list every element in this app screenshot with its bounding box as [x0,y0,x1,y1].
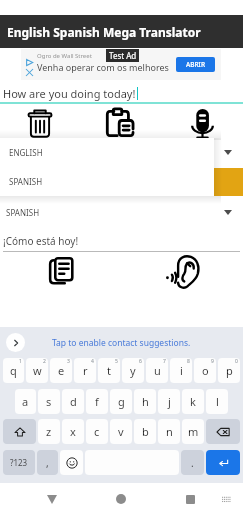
button[interactable]: x [62,419,84,444]
button[interactable]: ?123 [3,450,35,475]
button[interactable]: n [158,419,180,444]
button[interactable]: Voice input [191,108,214,139]
staticText: . [191,456,194,470]
staticText: i [180,363,183,378]
staticText: Venha operar com os melhores [37,61,169,73]
button[interactable]: i [170,358,192,383]
staticText: 7 [163,358,166,365]
button[interactable]: Tap to enable contact suggestions. [0,333,243,352]
button[interactable]: y [122,358,144,383]
button[interactable]: q [3,358,24,383]
button[interactable]: SPANISH [0,197,243,227]
button[interactable]: f [86,389,108,414]
button[interactable]: ABRIR [176,57,215,72]
button[interactable]: k [182,389,204,414]
button[interactable]: a [15,389,36,414]
button[interactable]: SPANISH [0,167,214,196]
staticText: SPANISH [6,207,40,218]
button[interactable]: enter [206,450,240,475]
button[interactable]: Home [109,487,133,511]
staticText: l [216,394,219,409]
staticText: a [22,394,29,409]
button[interactable]: ENGLISH [0,137,243,167]
button[interactable]: r [74,358,96,383]
button[interactable]: z [38,419,60,444]
button[interactable]: v [110,419,132,444]
staticText: p [226,363,233,378]
button[interactable]: Listen [165,255,200,288]
button[interactable]: . [181,450,204,475]
staticText: , [46,456,49,470]
button[interactable]: Expand suggestions [6,333,25,352]
button[interactable]: Paste [104,106,137,139]
staticText: o [202,363,209,378]
staticText: u [154,363,161,378]
button[interactable]: m [182,419,204,444]
staticText: SPANISH [9,176,43,187]
staticText: 6 [139,358,142,365]
button[interactable]: t [98,358,120,383]
staticText: ?123 [10,457,28,468]
button[interactable]: c [86,419,108,444]
staticText: n [166,424,173,439]
button[interactable]: Recent apps [178,487,202,511]
staticText: e [58,363,65,378]
staticText: 0 [235,358,238,365]
staticText: ENGLISH [6,147,40,158]
button[interactable]: p [218,358,240,383]
staticText: 2 [43,358,46,365]
staticText: f [95,394,99,409]
staticText: k [190,394,196,409]
staticText: b [142,424,149,439]
button[interactable]: h [134,389,156,414]
staticText: ABRIR [186,60,206,69]
staticText: t [107,363,111,378]
staticText: v [118,424,124,439]
staticText: s [46,394,52,409]
button[interactable]: j [158,389,180,414]
button[interactable]: d [62,389,84,414]
staticText: How are you doing today! [3,86,136,101]
button[interactable]: e [50,358,72,383]
button[interactable]: Clear text [27,107,53,138]
staticText: ENGLISH [9,147,43,158]
button[interactable]: b [134,419,156,444]
button[interactable]: s [38,389,60,414]
button[interactable]: English Spanish Mega Translator [0,15,243,48]
staticText: w [33,363,42,378]
button[interactable]: shift [3,419,36,444]
button[interactable]: g [110,389,132,414]
staticText: 4 [91,358,94,365]
staticText: x [70,424,76,439]
staticText: h [142,394,149,409]
staticText: r [83,363,88,378]
staticText: 8 [187,358,190,365]
staticText: g [118,394,125,409]
staticText: y [130,363,136,378]
button[interactable]: backspace [206,419,240,444]
staticText: q [10,363,17,378]
button[interactable]: Switch keyboard [214,487,238,511]
button[interactable]: l [206,389,228,414]
staticText: c [94,424,100,439]
staticText: 9 [211,358,214,365]
staticText: Test Ad [109,50,137,61]
button[interactable]: u [146,358,168,383]
staticText: English Spanish Mega Translator [7,24,201,40]
button[interactable]: emoji [60,450,83,475]
staticText: ¡Cómo está hoy! [3,234,79,248]
button[interactable]: Ogro de Wall Street [21,49,221,80]
button[interactable]: ENGLISH [0,138,214,167]
staticText: 1 [19,358,22,365]
staticText: m [188,424,199,439]
button[interactable]: w [26,358,48,383]
button[interactable]: Copy translation [48,256,75,287]
staticText: 3 [67,358,70,365]
staticText: Ogro de Wall Street [37,52,92,60]
staticText: Tap to enable contact suggestions. [52,337,191,349]
staticText: j [168,394,171,409]
button[interactable]: , [37,450,58,475]
button[interactable]: Back [40,487,64,511]
button[interactable]: o [194,358,216,383]
